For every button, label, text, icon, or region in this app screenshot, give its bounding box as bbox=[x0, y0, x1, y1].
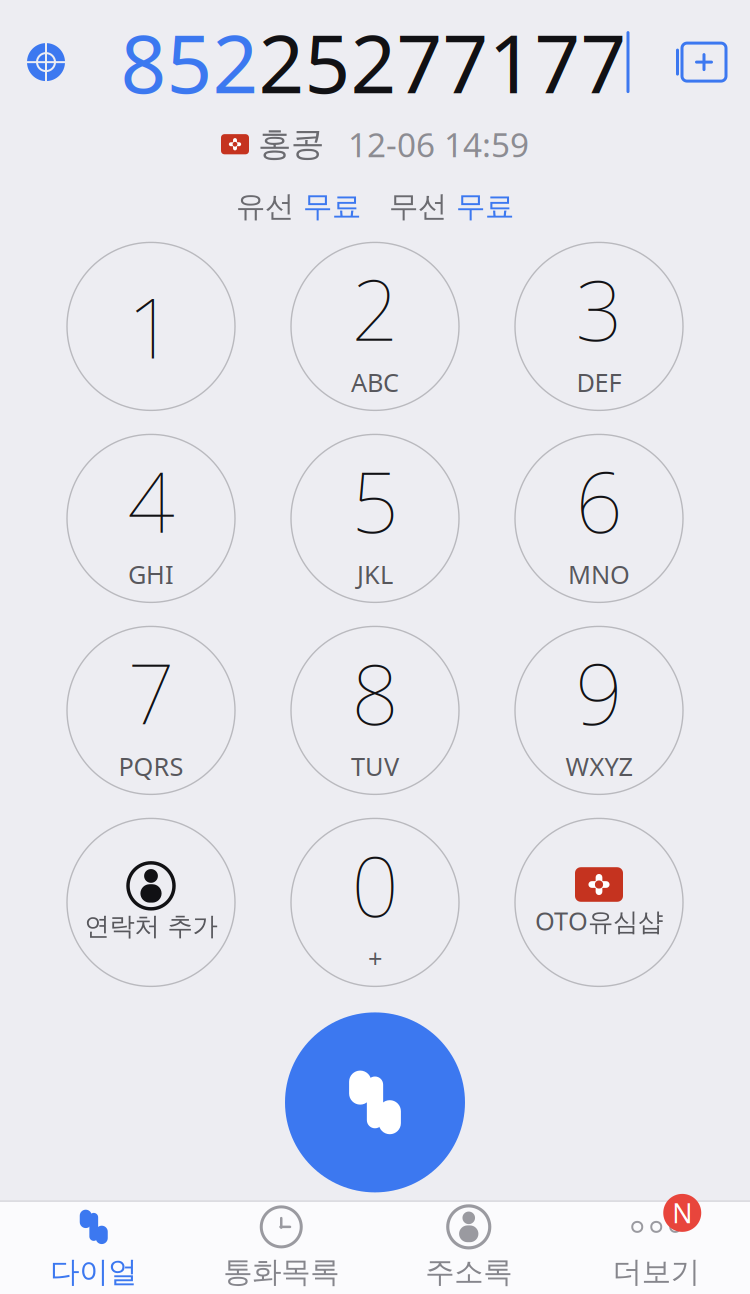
button[interactable]: 4 bbox=[67, 434, 235, 602]
staticText: GHI bbox=[128, 557, 174, 591]
button[interactable]: 0 bbox=[291, 818, 459, 986]
staticText: 12-06 14:59 bbox=[348, 122, 529, 166]
button[interactable]: 3 bbox=[515, 242, 683, 410]
staticText: 4 bbox=[127, 446, 174, 555]
button[interactable]: International bbox=[0, 16, 92, 108]
staticText: 3 bbox=[575, 254, 622, 363]
staticText: ABC bbox=[351, 365, 399, 399]
button[interactable]: 5 bbox=[291, 434, 459, 602]
button[interactable]: 2 bbox=[291, 242, 459, 410]
staticText: 5 bbox=[351, 446, 398, 555]
staticText: N bbox=[672, 1195, 692, 1231]
staticText: 7 bbox=[127, 638, 174, 747]
staticText: 무료 bbox=[303, 188, 361, 224]
staticText: 1 bbox=[127, 271, 174, 381]
staticText: 무선 bbox=[389, 188, 456, 224]
button[interactable]: 다이얼 bbox=[0, 1198, 187, 1294]
staticText: 6 bbox=[575, 446, 622, 555]
button[interactable]: 7 bbox=[67, 626, 235, 794]
button[interactable]: OTO유심샵 bbox=[515, 818, 683, 986]
staticText: MNO bbox=[568, 557, 630, 591]
staticText: 유선 bbox=[236, 188, 303, 224]
staticText: TUV bbox=[351, 749, 399, 783]
button[interactable]: Backspace bbox=[658, 16, 750, 108]
staticText: 25277177 bbox=[258, 9, 626, 115]
staticText: PQRS bbox=[118, 749, 183, 783]
button[interactable]: 1 bbox=[67, 242, 235, 410]
button[interactable]: 통화목록 bbox=[187, 1198, 375, 1294]
staticText: 홍콩 bbox=[258, 124, 324, 165]
staticText: JKL bbox=[357, 557, 393, 591]
staticText: 다이얼 bbox=[50, 1254, 137, 1290]
staticText: 0 bbox=[351, 830, 398, 939]
button[interactable]: 주소록 bbox=[375, 1198, 562, 1294]
staticText: 통화목록 bbox=[223, 1254, 339, 1290]
button[interactable]: 8 bbox=[291, 626, 459, 794]
button[interactable]: 9 bbox=[515, 626, 683, 794]
staticText: 무료 bbox=[456, 188, 514, 224]
staticText: 852 bbox=[120, 9, 258, 115]
staticText: 8 bbox=[351, 638, 398, 747]
button[interactable]: Call bbox=[285, 1012, 465, 1192]
staticText: OTO유심샵 bbox=[535, 904, 663, 938]
staticText: DEF bbox=[576, 365, 621, 399]
staticText: 2 bbox=[351, 254, 398, 363]
button[interactable]: N bbox=[562, 1198, 750, 1294]
staticText: 9 bbox=[575, 638, 622, 747]
staticText: 주소록 bbox=[425, 1254, 512, 1290]
staticText: 더보기 bbox=[613, 1254, 700, 1290]
button[interactable]: 연락처 추가 bbox=[67, 818, 235, 986]
staticText: + bbox=[368, 941, 382, 975]
staticText: WXYZ bbox=[565, 749, 632, 783]
button[interactable]: 6 bbox=[515, 434, 683, 602]
staticText: 연락처 추가 bbox=[84, 911, 217, 942]
